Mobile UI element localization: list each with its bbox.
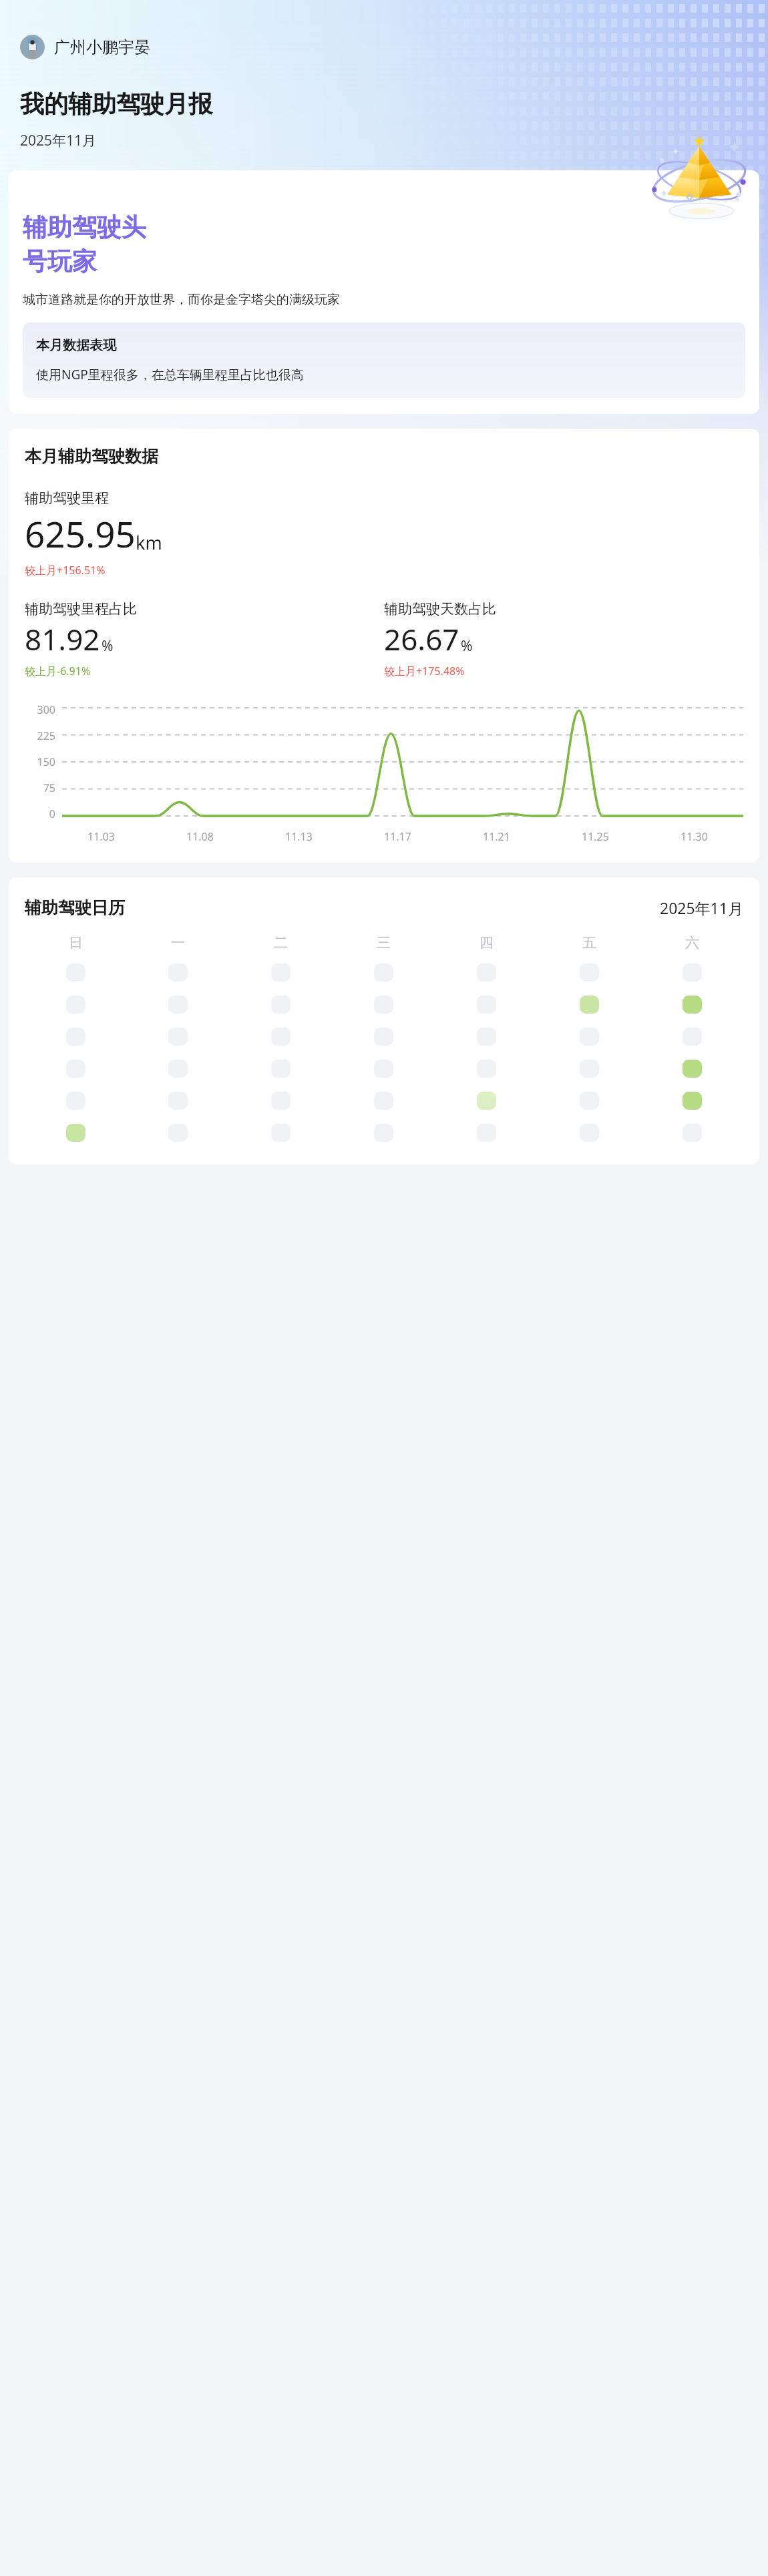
staticText: 2025年11月	[20, 131, 97, 150]
button[interactable]: Day cell	[66, 1092, 85, 1110]
button[interactable]: Day cell	[271, 1060, 291, 1078]
staticText: 本月数据表现	[36, 337, 116, 354]
staticText: 辅助驾驶头	[23, 212, 146, 243]
button[interactable]: Day cell	[66, 996, 85, 1014]
staticText: km	[136, 530, 162, 555]
button[interactable]: Day cell	[477, 996, 496, 1014]
staticText: 辅助驾驶里程占比	[25, 600, 137, 618]
button[interactable]: 广州小鹏宇晏	[20, 35, 748, 59]
staticText: 四	[479, 934, 494, 951]
staticText: 日	[69, 934, 83, 951]
button[interactable]: Day cell	[683, 1092, 702, 1110]
staticText: 81.92	[25, 619, 100, 659]
button[interactable]: Day cell	[168, 1060, 188, 1078]
button[interactable]: Day cell	[683, 963, 702, 982]
staticText: 一	[171, 934, 185, 951]
button[interactable]: Day cell	[66, 1124, 85, 1142]
button[interactable]: Day cell	[168, 963, 188, 982]
staticText: 225	[37, 728, 55, 743]
staticText: 11.08	[186, 829, 214, 844]
staticText: 2025年11月	[660, 897, 743, 918]
button[interactable]: Day cell	[168, 1124, 188, 1142]
staticText: 六	[685, 934, 699, 951]
button[interactable]: Day cell	[66, 1060, 85, 1078]
button[interactable]: Day cell	[66, 963, 85, 982]
button[interactable]: Day cell	[168, 1028, 188, 1046]
button[interactable]: Day cell	[271, 996, 291, 1014]
staticText: %	[461, 636, 473, 656]
staticText: 11.03	[87, 829, 115, 844]
button[interactable]: Day cell	[168, 996, 188, 1014]
staticText: 本月辅助驾驶数据	[25, 446, 158, 467]
button[interactable]: Day cell	[271, 963, 291, 982]
button[interactable]: Day cell	[683, 1124, 702, 1142]
staticText: 300	[37, 702, 55, 717]
button[interactable]: 辅助驾驶头	[9, 170, 759, 414]
button[interactable]: Day cell	[683, 996, 702, 1014]
staticText: 11.25	[582, 829, 609, 844]
button[interactable]: Day cell	[580, 996, 599, 1014]
staticText: 辅助驾驶里程	[25, 489, 109, 507]
staticText: 二	[274, 934, 288, 951]
staticText: 26.67	[384, 619, 459, 659]
staticText: 较上月-6.91%	[25, 664, 91, 678]
staticText: 五	[582, 934, 596, 951]
staticText: 我的辅助驾驶月报	[20, 89, 212, 119]
button[interactable]: Day cell	[374, 996, 393, 1014]
button[interactable]: Day cell	[374, 1092, 393, 1110]
staticText: 较上月+156.51%	[25, 563, 106, 578]
staticText: 号玩家	[23, 246, 97, 277]
button[interactable]: Day cell	[374, 1028, 393, 1046]
staticText: 广州小鹏宇晏	[54, 37, 150, 57]
staticText: 使用NGP里程很多，在总车辆里程里占比也很高	[36, 366, 304, 383]
staticText: 11.13	[285, 829, 313, 844]
button[interactable]: Day cell	[580, 963, 599, 982]
button[interactable]: Day cell	[168, 1092, 188, 1110]
button[interactable]: Day cell	[271, 1028, 291, 1046]
button[interactable]: Day cell	[66, 1028, 85, 1046]
button[interactable]: Day cell	[477, 1092, 496, 1110]
button[interactable]: Day cell	[271, 1092, 291, 1110]
button[interactable]: 本月辅助驾驶数据	[9, 429, 759, 863]
staticText: 11.17	[384, 829, 411, 844]
staticText: %	[102, 636, 114, 656]
staticText: 较上月+175.48%	[384, 664, 465, 678]
staticText: 150	[37, 755, 55, 769]
staticText: 625.95	[25, 509, 136, 558]
button[interactable]: Day cell	[477, 963, 496, 982]
button[interactable]: Day cell	[580, 1060, 599, 1078]
button[interactable]: Day cell	[374, 1124, 393, 1142]
button[interactable]: Day cell	[683, 1060, 702, 1078]
button[interactable]: Day cell	[477, 1124, 496, 1142]
staticText: 辅助驾驶日历	[25, 897, 125, 918]
button[interactable]: Day cell	[580, 1124, 599, 1142]
button[interactable]: Day cell	[477, 1060, 496, 1078]
button[interactable]: Day cell	[683, 1028, 702, 1046]
button[interactable]: Day cell	[580, 1028, 599, 1046]
button[interactable]: Day cell	[580, 1092, 599, 1110]
button[interactable]: Day cell	[374, 963, 393, 982]
staticText: 0	[49, 807, 55, 821]
staticText: 三	[377, 934, 391, 951]
staticText: 城市道路就是你的开放世界，而你是金字塔尖的满级玩家	[23, 292, 340, 308]
staticText: 辅助驾驶天数占比	[384, 600, 496, 618]
button[interactable]: Day cell	[477, 1028, 496, 1046]
button[interactable]: Day cell	[374, 1060, 393, 1078]
button[interactable]: 辅助驾驶日历	[9, 877, 759, 1164]
button[interactable]: Day cell	[271, 1124, 291, 1142]
staticText: 11.30	[681, 829, 708, 844]
staticText: 11.21	[483, 829, 510, 844]
staticText: 75	[43, 781, 55, 795]
